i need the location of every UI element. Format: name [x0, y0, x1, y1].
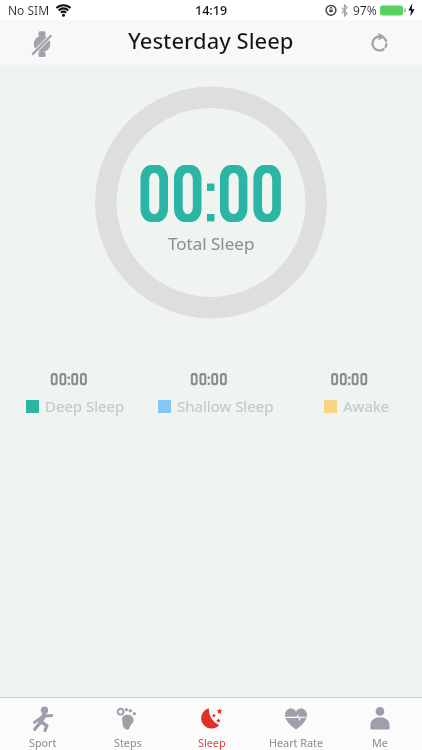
staticText: 97%: [353, 2, 377, 18]
staticText: Sport: [29, 735, 57, 750]
staticText: Total Sleep: [168, 232, 255, 255]
button[interactable]: Sport: [0, 698, 85, 750]
staticText: Steps: [114, 735, 142, 750]
staticText: Deep Sleep: [45, 396, 125, 416]
button[interactable]: Heart Rate: [254, 698, 338, 750]
button[interactable]: [28, 29, 56, 57]
staticText: Awake: [343, 396, 390, 416]
button[interactable]: [366, 29, 394, 57]
staticText: Sleep: [198, 735, 226, 750]
staticText: No SIM: [8, 2, 50, 18]
button[interactable]: Sleep: [170, 698, 254, 750]
staticText: 14:19: [195, 2, 228, 19]
button[interactable]: Me: [338, 698, 422, 750]
staticText: Me: [372, 735, 388, 750]
button[interactable]: Steps: [85, 698, 170, 750]
staticText: Shallow Sleep: [177, 396, 274, 416]
staticText: Heart Rate: [269, 735, 324, 750]
staticText: Yesterday Sleep: [128, 25, 294, 55]
